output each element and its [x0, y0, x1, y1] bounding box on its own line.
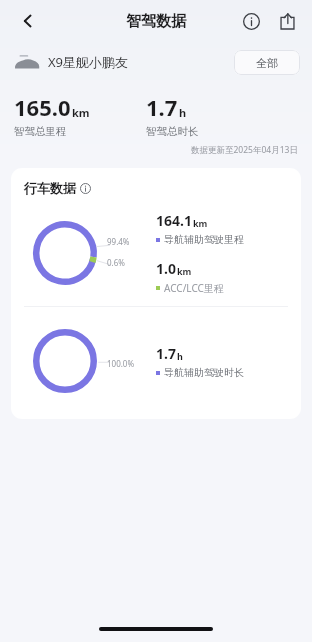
button[interactable]: X9星舰小鹏友 [14, 53, 129, 71]
staticText: km [177, 265, 192, 277]
staticText: h [177, 350, 183, 362]
staticText: 智驾总时长 [146, 125, 199, 138]
staticText: 数据更新至2025年04月13日 [191, 144, 298, 156]
button[interactable]: Back [12, 5, 44, 37]
staticText: km [72, 105, 90, 120]
staticText: 1.7 [146, 92, 178, 122]
button[interactable]: 全部 [234, 50, 300, 75]
button[interactable]: Info [236, 6, 266, 36]
staticText: km [193, 217, 208, 229]
button[interactable]: 行车数据 [24, 180, 91, 196]
staticText: 导航辅助驾驶时长 [164, 366, 244, 379]
staticText: ACC/LCC里程 [164, 281, 224, 295]
staticText: 全部 [256, 56, 278, 70]
staticText: 100.0% [107, 358, 135, 369]
staticText: 行车数据 [24, 180, 76, 196]
button[interactable]: Share [272, 6, 302, 36]
staticText: 0.6% [107, 257, 125, 268]
staticText: 智驾总里程 [14, 125, 67, 138]
staticText: X9星舰小鹏友 [48, 53, 129, 71]
staticText: 165.0 [14, 92, 71, 122]
staticText: 99.4% [107, 236, 130, 247]
staticText: 智驾数据 [126, 12, 186, 31]
staticText: 1.7 [156, 344, 176, 363]
staticText: 导航辅助驾驶里程 [164, 233, 244, 246]
staticText: h [179, 105, 187, 120]
staticText: 1.0 [156, 259, 176, 278]
staticText: 164.1 [156, 211, 192, 230]
